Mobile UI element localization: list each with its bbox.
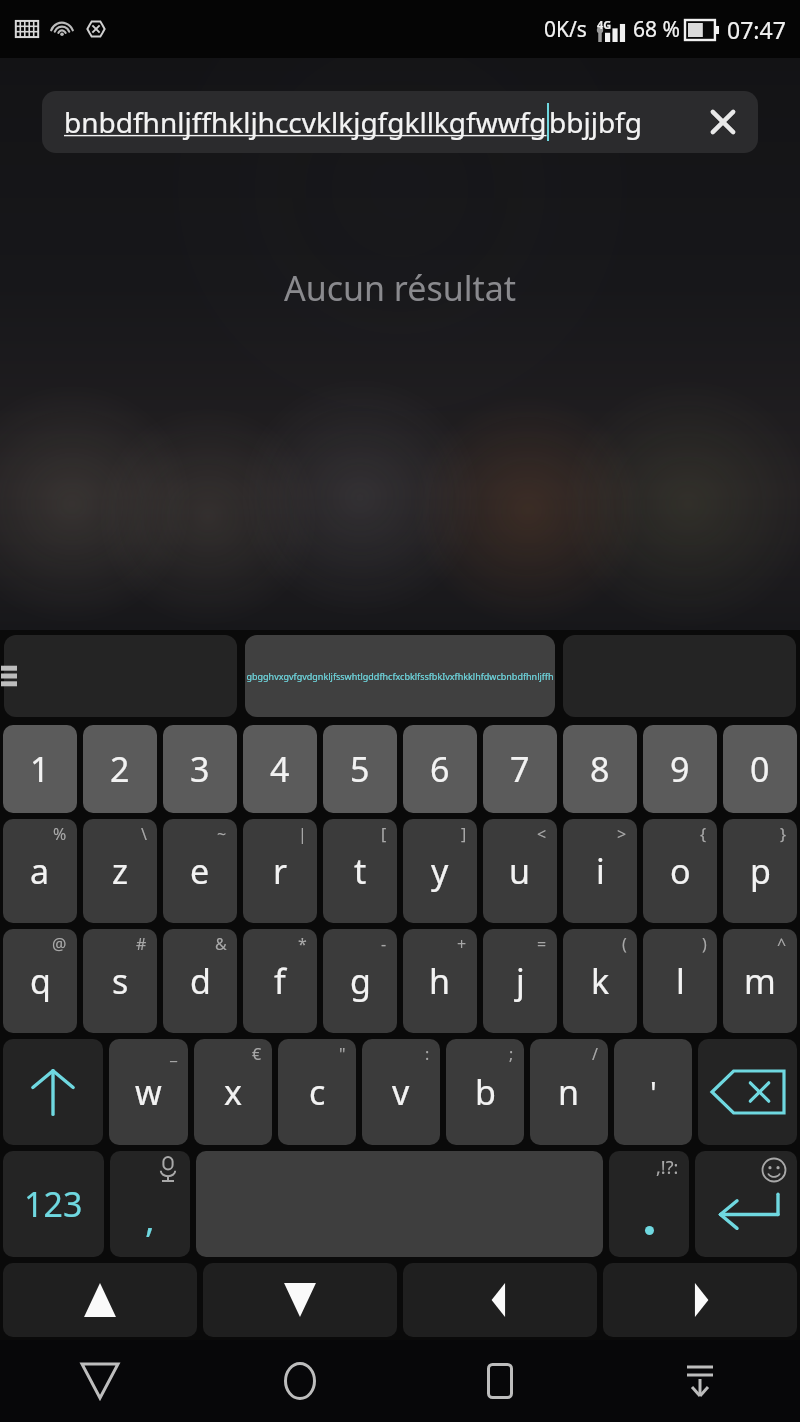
staticText: 9 [670,746,690,792]
staticText: p [750,848,771,894]
button[interactable]: ' [614,1039,692,1145]
button[interactable]: } [723,819,797,923]
other: Keyboard menu [1,661,17,691]
button[interactable]: 0 [723,725,797,813]
button[interactable]: 2 [83,725,157,813]
button[interactable]: 4 [243,725,317,813]
staticText: ) [702,933,707,955]
button[interactable]: \ [83,819,157,923]
staticText: e [190,848,210,894]
button[interactable]: : [362,1039,440,1145]
button[interactable]: _ [109,1039,188,1145]
button[interactable]: - [323,929,397,1033]
button[interactable]: 123 [3,1151,104,1257]
button[interactable]: Hide keyboard [600,1340,800,1422]
button[interactable]: @ [3,929,77,1033]
staticText: b [475,1069,496,1115]
button[interactable]: Move down [203,1263,397,1337]
staticText: gbgghvxgvfgvdgnkljfsswhtlgddfhcfxcbklfss… [245,670,555,682]
button[interactable]: gbgghvxgvfgvdgnkljfsswhtlgddfhcfxcbklfss… [245,635,555,717]
button[interactable]: " [278,1039,356,1145]
staticText: 68 % [633,15,680,44]
button[interactable]: { [643,819,717,923]
button[interactable]: 5 [323,725,397,813]
button[interactable]: Move left [403,1263,597,1337]
button[interactable]: < [483,819,557,923]
staticText: @ [52,933,67,955]
button[interactable]: Clear search [688,91,758,153]
button[interactable]: ^ [723,929,797,1033]
staticText: % [53,823,67,845]
button[interactable]: Backspace [698,1039,797,1145]
staticText: 1 [30,746,50,792]
staticText: g [350,958,371,1004]
staticText: a [30,848,50,894]
button[interactable]: ( [563,929,637,1033]
button[interactable]: | [243,819,317,923]
staticText: w [135,1069,162,1115]
button[interactable]: / [530,1039,608,1145]
button[interactable]: # [83,929,157,1033]
button[interactable]: Home [200,1340,400,1422]
staticText: = [537,933,547,955]
button[interactable]: 8 [563,725,637,813]
staticText: 07:47 [727,14,786,45]
staticText: y [431,848,449,894]
button[interactable]: ~ [163,819,237,923]
button[interactable]: + [403,929,477,1033]
staticText: c [309,1069,326,1115]
button[interactable]: € [194,1039,272,1145]
staticText: d [190,958,211,1004]
staticText: q [30,958,51,1004]
staticText: ^ [777,933,787,955]
button[interactable]: & [163,929,237,1033]
staticText: } [780,823,787,845]
staticText: i [596,848,605,894]
button[interactable]: * [243,929,317,1033]
staticText: ; [509,1043,514,1065]
staticText: 3 [190,746,210,792]
button[interactable]: = [483,929,557,1033]
staticText: 0 [750,746,770,792]
staticText: [ [381,823,387,845]
staticText: + [457,933,467,955]
button[interactable]: Move right [603,1263,797,1337]
staticText: ( [622,933,627,955]
button[interactable]: 6 [403,725,477,813]
staticText: # [136,933,147,955]
button[interactable]: 1 [3,725,77,813]
button[interactable]: Period [609,1151,689,1257]
button[interactable]: ] [403,819,477,923]
button[interactable]: Shift [3,1039,103,1145]
staticText: z [112,848,128,894]
button[interactable] [4,635,237,717]
staticText: 7 [510,746,530,792]
button[interactable]: [ [323,819,397,923]
button[interactable]: ) [643,929,717,1033]
button[interactable]: 7 [483,725,557,813]
button[interactable]: 9 [643,725,717,813]
staticText: : [425,1043,430,1065]
button[interactable]: Move up [3,1263,197,1337]
staticText: ~ [217,823,227,845]
staticText: x [224,1069,242,1115]
button[interactable]: Recents [400,1340,600,1422]
staticText: \ [141,823,147,845]
button[interactable]: 3 [163,725,237,813]
staticText: k [591,958,610,1004]
staticText: ] [461,823,467,845]
staticText: 6 [430,746,450,792]
button[interactable]: ; [446,1039,524,1145]
staticText: , [145,1194,155,1243]
button[interactable]: % [3,819,77,923]
staticText: 8 [590,746,610,792]
staticText: _ [170,1043,178,1065]
button[interactable]: > [563,819,637,923]
button[interactable]: Back [0,1340,200,1422]
staticText: > [617,823,627,845]
staticText: < [537,823,547,845]
button[interactable]: Enter [695,1151,797,1257]
button[interactable]: Comma and voice input [110,1151,190,1257]
